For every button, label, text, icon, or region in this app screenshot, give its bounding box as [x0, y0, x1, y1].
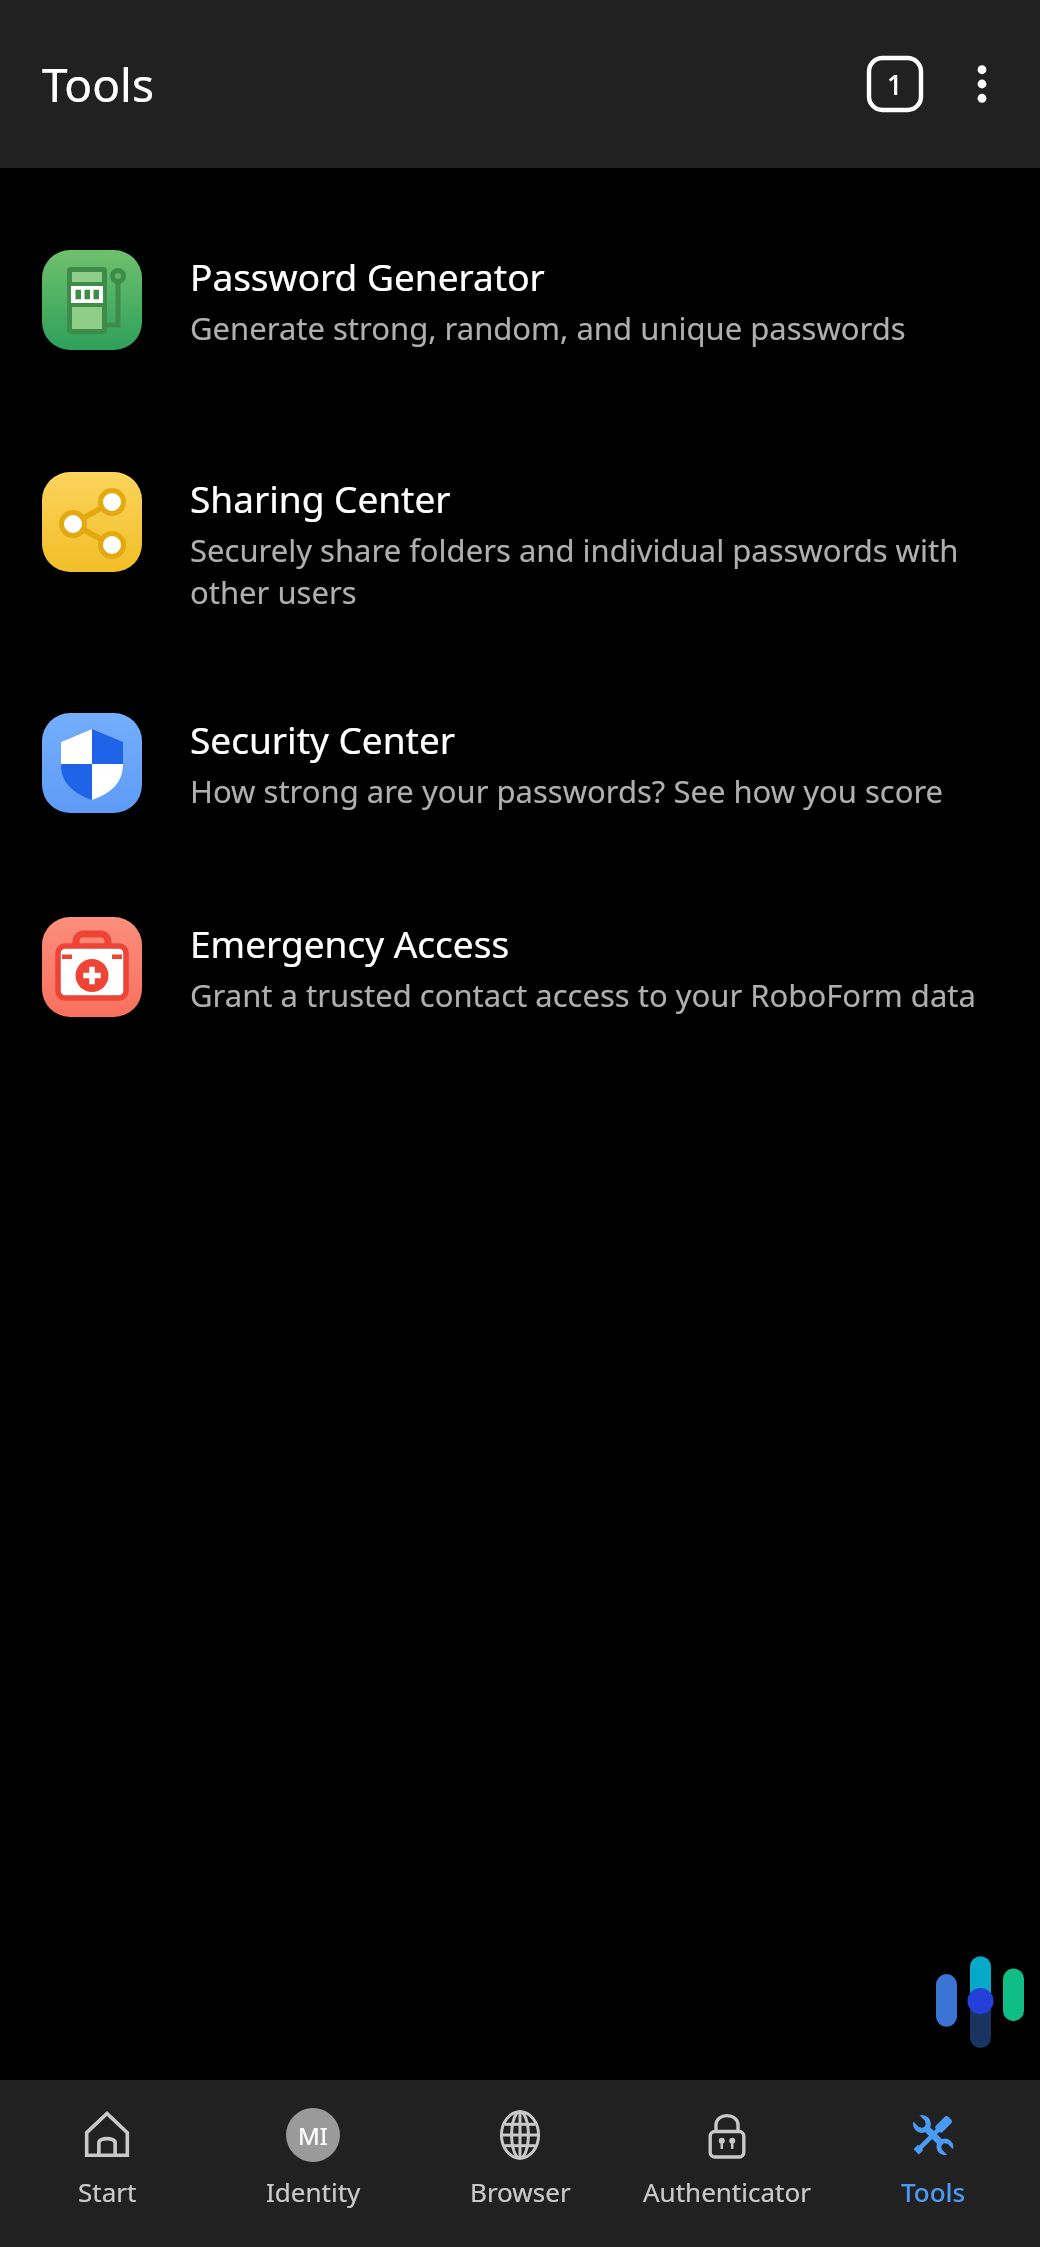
staticText: Start [78, 2174, 137, 2209]
staticText: 1 [887, 66, 903, 103]
staticText: Password Generator [190, 251, 545, 301]
button[interactable]: Start [7, 2080, 207, 2247]
button[interactable]: RoboForm assistant [930, 1945, 1030, 2057]
staticText: Securely share folders and individual pa… [190, 529, 1040, 613]
staticText: Tools [42, 53, 154, 116]
button[interactable]: Sharing Center [0, 472, 1040, 613]
button[interactable]: Open tabs, 1 [860, 49, 930, 119]
button[interactable]: Browser [420, 2080, 620, 2247]
button[interactable]: MI [213, 2080, 413, 2247]
staticText: Browser [470, 2174, 571, 2209]
staticText: MI [298, 2119, 328, 2152]
button[interactable]: More options [946, 48, 1018, 120]
staticText: Generate strong, random, and unique pass… [190, 307, 1040, 349]
staticText: Authenticator [643, 2174, 811, 2209]
staticText: Tools [901, 2174, 966, 2209]
staticText: Emergency Access [190, 918, 510, 968]
button[interactable]: Tools [833, 2080, 1033, 2247]
button[interactable]: Password Generator [0, 250, 1040, 350]
button[interactable]: Security Center [0, 713, 1040, 813]
staticText: How strong are your passwords? See how y… [190, 770, 1040, 812]
staticText: Grant a trusted contact access to your R… [190, 974, 1040, 1016]
staticText: Identity [266, 2174, 361, 2209]
button[interactable]: Emergency Access [0, 917, 1040, 1017]
staticText: Sharing Center [190, 473, 451, 523]
button[interactable]: Authenticator [627, 2080, 827, 2247]
staticText: Security Center [190, 714, 456, 764]
